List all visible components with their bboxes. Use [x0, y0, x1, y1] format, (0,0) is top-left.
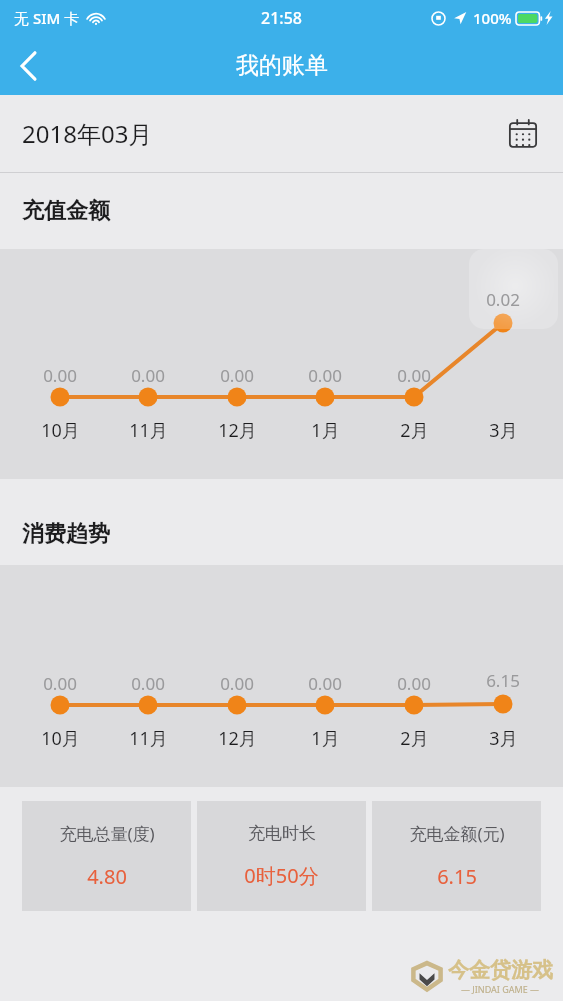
staticText: 0.00	[308, 672, 342, 695]
button[interactable]: 充电总量(度)	[22, 801, 191, 911]
staticText: 12月	[218, 418, 257, 443]
staticText: 0时50分	[244, 862, 319, 889]
staticText: 充电时长	[248, 823, 316, 844]
staticText: 0.00	[131, 672, 165, 695]
staticText: — JINDAI GAME —	[461, 983, 540, 995]
staticText: 6.15	[486, 669, 520, 692]
staticText: 21:58	[261, 7, 302, 29]
staticText: 0.00	[397, 364, 431, 387]
staticText: 0.02	[486, 288, 520, 311]
button[interactable]: 充电时长	[197, 801, 366, 911]
staticText: 3月	[489, 726, 518, 751]
staticText: 0.00	[43, 364, 77, 387]
staticText: 2018年03月	[22, 117, 153, 150]
staticText: 100%	[473, 8, 512, 28]
button[interactable]: 充电金额(元)	[372, 801, 541, 911]
button[interactable]: Back	[0, 36, 56, 95]
staticText: 无 SIM 卡	[14, 8, 80, 28]
staticText: 0.00	[220, 364, 254, 387]
button[interactable]: Select month	[505, 116, 541, 152]
staticText: 10月	[41, 418, 80, 443]
staticText: 4.80	[87, 863, 127, 890]
staticText: 11月	[129, 726, 168, 751]
staticText: 0.00	[220, 672, 254, 695]
staticText: 消费趋势	[22, 520, 110, 548]
staticText: 充电总量(度)	[59, 822, 155, 845]
staticText: 10月	[41, 726, 80, 751]
staticText: 6.15	[437, 863, 477, 890]
staticText: 12月	[218, 726, 257, 751]
staticText: 0.00	[308, 364, 342, 387]
staticText: 2月	[400, 418, 429, 443]
staticText: 3月	[489, 418, 518, 443]
staticText: 0.00	[397, 672, 431, 695]
staticText: 0.00	[43, 672, 77, 695]
staticText: 1月	[311, 726, 340, 751]
staticText: 我的账单	[236, 51, 328, 80]
staticText: 2月	[400, 726, 429, 751]
staticText: 充电金额(元)	[409, 822, 505, 845]
staticText: 11月	[129, 418, 168, 443]
staticText: 1月	[311, 418, 340, 443]
button[interactable]: 2018年03月	[0, 95, 563, 172]
staticText: 0.00	[131, 364, 165, 387]
staticText: 充值金额	[22, 197, 110, 225]
staticText: 今金贷游戏	[448, 957, 553, 983]
